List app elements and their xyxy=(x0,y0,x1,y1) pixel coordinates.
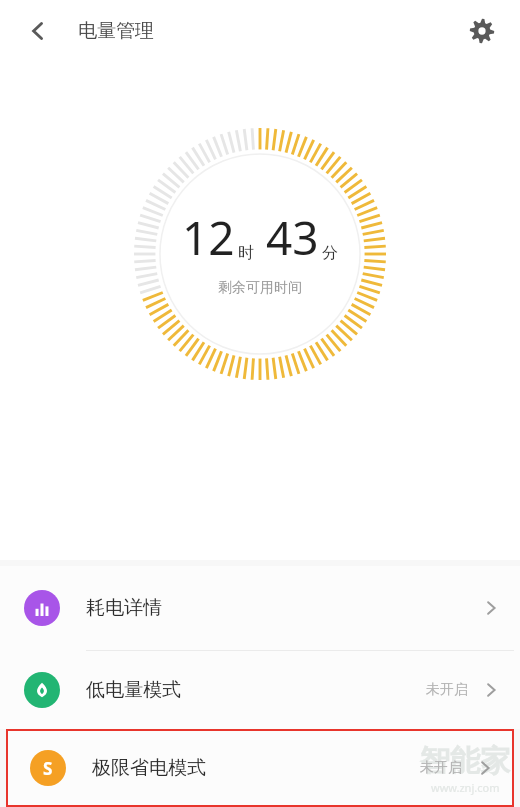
staticText: 43 xyxy=(266,206,319,269)
staticText: 未开启 xyxy=(426,681,468,699)
staticText: 低电量模式 xyxy=(86,678,181,702)
staticText: 剩余可用时间 xyxy=(218,279,302,297)
button[interactable]: Settings xyxy=(458,7,506,55)
button[interactable]: 耗电详情 xyxy=(0,566,520,651)
staticText: www.znj.com xyxy=(431,780,500,795)
staticText: 12 xyxy=(182,206,235,269)
staticText: S xyxy=(43,757,53,780)
button[interactable]: S xyxy=(6,729,514,807)
staticText: 极限省电模式 xyxy=(92,756,206,780)
staticText: 分 xyxy=(322,243,338,263)
button[interactable]: Back xyxy=(14,7,62,55)
staticText: 时 xyxy=(238,243,254,263)
staticText: 电量管理 xyxy=(78,19,154,43)
staticText: 未开启 xyxy=(420,759,462,777)
staticText: 智能家 xyxy=(420,742,510,780)
button[interactable]: 低电量模式 xyxy=(0,651,520,729)
staticText: 耗电详情 xyxy=(86,596,162,620)
